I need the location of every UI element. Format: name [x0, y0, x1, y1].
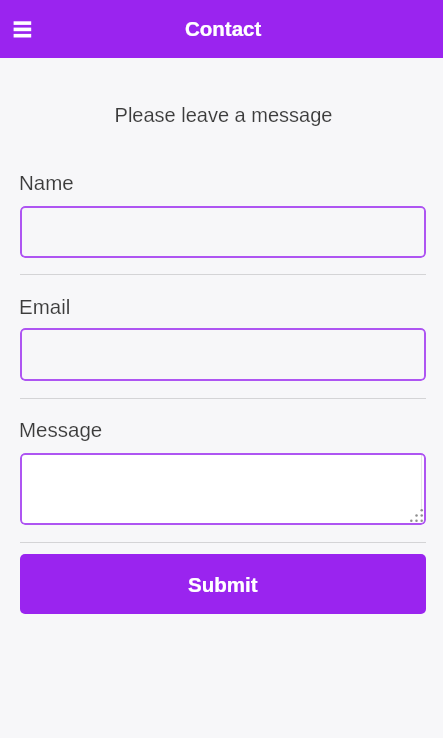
staticText: Email — [19, 295, 71, 318]
staticText: Contact — [185, 17, 262, 40]
staticText: Name — [19, 171, 74, 194]
button[interactable]: Email input field — [20, 328, 426, 381]
button[interactable]: Message input field — [20, 453, 426, 525]
button[interactable]: Open navigation menu — [8, 12, 36, 46]
button[interactable]: Name input field — [20, 206, 426, 258]
button[interactable]: Submit — [20, 554, 426, 614]
staticText: Submit — [188, 573, 258, 596]
staticText: Message — [19, 418, 103, 441]
staticText: Please leave a message — [2, 104, 443, 126]
